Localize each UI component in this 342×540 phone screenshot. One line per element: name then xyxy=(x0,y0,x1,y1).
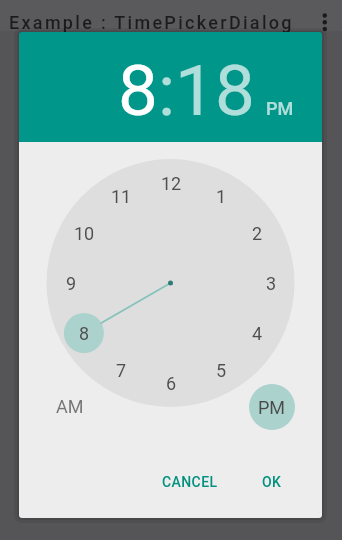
button[interactable]: CANCEL xyxy=(146,464,234,500)
staticText: 3 xyxy=(266,273,277,294)
staticText: 7 xyxy=(116,360,127,381)
button[interactable]: 3 xyxy=(253,271,289,295)
staticText: 9 xyxy=(66,273,77,294)
button[interactable]: 1 xyxy=(203,184,239,208)
staticText: AM xyxy=(56,396,84,417)
button[interactable]: AM xyxy=(48,392,92,420)
button[interactable]: PM xyxy=(266,98,294,119)
staticText: 2 xyxy=(252,223,263,244)
staticText: Example : TimePickerDialog xyxy=(9,12,294,33)
button[interactable]: 7 xyxy=(103,358,139,382)
button[interactable]: 11 xyxy=(103,184,139,208)
button[interactable]: OK xyxy=(248,464,296,500)
staticText: 5 xyxy=(216,360,227,381)
button[interactable]: PM xyxy=(249,384,295,430)
staticText: 12 xyxy=(161,173,182,194)
staticText: 10 xyxy=(74,223,95,244)
staticText: OK xyxy=(262,474,282,490)
staticText: CANCEL xyxy=(162,474,218,490)
button[interactable]: 6 xyxy=(153,371,189,395)
button[interactable]: 10 xyxy=(66,221,102,245)
staticText: 4 xyxy=(252,323,263,344)
staticText: 8 xyxy=(79,323,90,344)
button[interactable]: 9 xyxy=(53,271,89,295)
staticText: 6 xyxy=(166,373,177,394)
button[interactable]: 12 xyxy=(153,171,189,195)
button[interactable]: 2 xyxy=(239,221,275,245)
button[interactable]: 8:18 xyxy=(118,49,255,132)
staticText: 1 xyxy=(216,186,227,207)
button[interactable]: 4 xyxy=(239,321,275,345)
staticText: 11 xyxy=(111,186,132,207)
button[interactable]: 8 xyxy=(66,321,102,345)
button[interactable] xyxy=(317,11,333,35)
staticText: PM xyxy=(258,397,286,418)
button[interactable]: 5 xyxy=(203,358,239,382)
